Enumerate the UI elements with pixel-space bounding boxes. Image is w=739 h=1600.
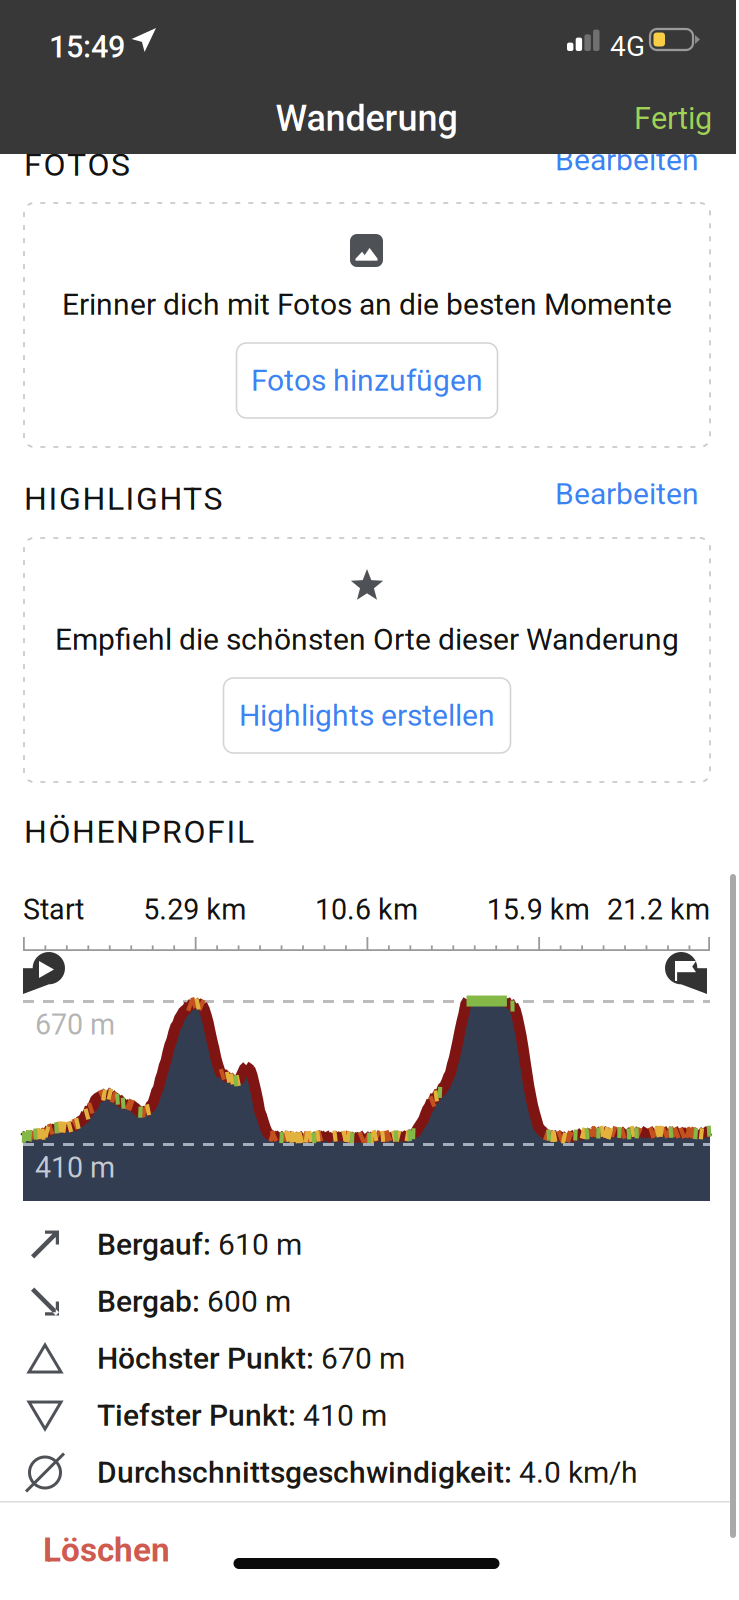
staticText: 10.6 km <box>315 893 418 927</box>
staticText: Durchschnittsgeschwindigkeit: 4.0 km/h <box>97 1455 638 1490</box>
staticText: Fotos hinzufügen <box>251 363 483 398</box>
staticText: Höchster Punkt: 670 m <box>97 1341 405 1376</box>
staticText: Tiefster Punkt: 410 m <box>97 1398 387 1433</box>
staticText: Highlights erstellen <box>239 698 495 733</box>
staticText: Start <box>23 893 84 927</box>
staticText: Empfiehl die schönsten Orte dieser Wande… <box>55 622 679 657</box>
staticText: Fertig <box>634 100 712 136</box>
staticText: Erinner dich mit Fotos an die besten Mom… <box>62 287 672 322</box>
staticText: 410 m <box>35 1151 115 1185</box>
staticText: Löschen <box>43 1530 170 1570</box>
staticText: HÖHENPROFIL <box>24 813 254 850</box>
staticText: 4G <box>610 30 645 63</box>
staticText: Bergauf: 610 m <box>97 1227 302 1262</box>
staticText: 5.29 km <box>143 893 246 927</box>
button[interactable]: Highlights erstellen <box>223 678 510 753</box>
staticText: 15:49 <box>49 29 125 65</box>
staticText: 670 m <box>35 1008 115 1042</box>
staticText: 15.9 km <box>487 893 590 927</box>
button[interactable]: Löschen <box>0 1518 736 1582</box>
staticText: 21.2 km <box>607 893 710 927</box>
staticText: Bearbeiten <box>555 142 699 178</box>
staticText: Wanderung <box>275 97 457 140</box>
staticText: Bergab: 600 m <box>97 1284 291 1319</box>
button[interactable]: Bearbeiten <box>545 470 709 518</box>
staticText: HIGHLIGHTS <box>24 480 222 517</box>
staticText: Bearbeiten <box>555 476 699 512</box>
button[interactable]: Fotos hinzufügen <box>236 343 497 418</box>
button[interactable]: Bearbeiten <box>545 136 709 184</box>
staticText: FOTOS <box>24 146 130 183</box>
button[interactable]: Fertig <box>610 88 736 148</box>
